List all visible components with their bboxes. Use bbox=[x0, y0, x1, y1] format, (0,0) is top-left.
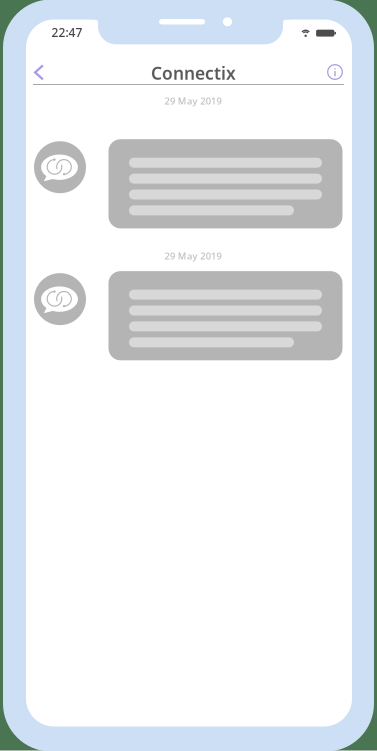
button[interactable]: Back bbox=[22, 55, 56, 89]
staticText: 29 May 2019 bbox=[164, 94, 221, 107]
staticText: Connectix bbox=[151, 62, 236, 85]
staticText: 22:47 bbox=[51, 24, 82, 40]
button[interactable]: Connectix bbox=[133, 58, 253, 88]
button[interactable]: Info bbox=[318, 55, 352, 89]
button[interactable]: Time 22:47 bbox=[51, 24, 82, 40]
staticText: 29 May 2019 bbox=[164, 249, 221, 262]
